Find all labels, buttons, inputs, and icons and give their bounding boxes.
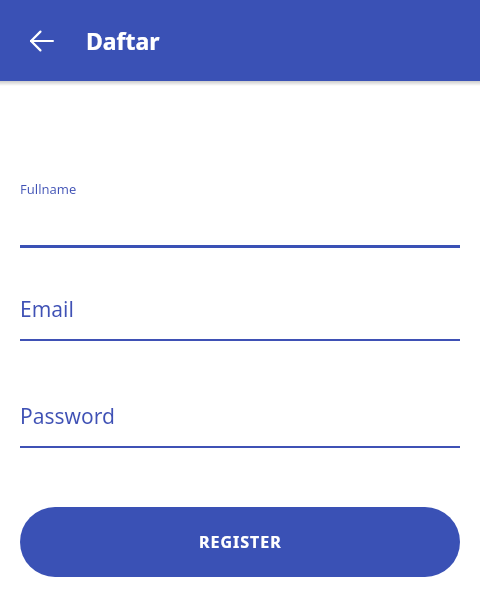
staticText: REGISTER [199, 531, 282, 553]
button[interactable]: REGISTER [20, 507, 460, 577]
staticText: Daftar [86, 25, 160, 56]
button[interactable]: Fullname [20, 179, 460, 248]
button[interactable]: Password [20, 402, 460, 448]
staticText: Email [20, 295, 74, 324]
button[interactable]: Email [20, 295, 460, 341]
button[interactable]: Back [18, 17, 66, 65]
staticText: Fullname [20, 180, 77, 198]
staticText: Password [20, 402, 115, 431]
